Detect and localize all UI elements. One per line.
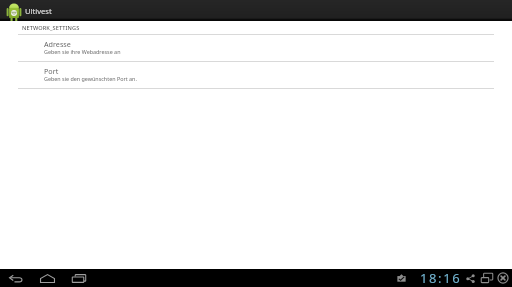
staticText: NETWORK_SETTINGS [22,24,80,32]
button[interactable]: Back [0,269,31,287]
button[interactable]: Close [495,269,511,287]
staticText: Geben sie ihre Webadresse an [44,48,121,55]
button[interactable]: Port [0,62,512,89]
button[interactable]: Display [478,269,495,287]
staticText: Geben sie den gewünschten Port an. [44,75,137,82]
button[interactable]: Adresse [0,35,512,62]
staticText: Adresse [44,39,71,49]
staticText: Ultivest [25,6,52,16]
staticText: 18:16 [420,269,462,287]
button[interactable]: Home [31,269,63,287]
button[interactable]: Recent apps [63,269,95,287]
staticText: Port [44,66,59,76]
button[interactable]: Share [463,269,478,287]
